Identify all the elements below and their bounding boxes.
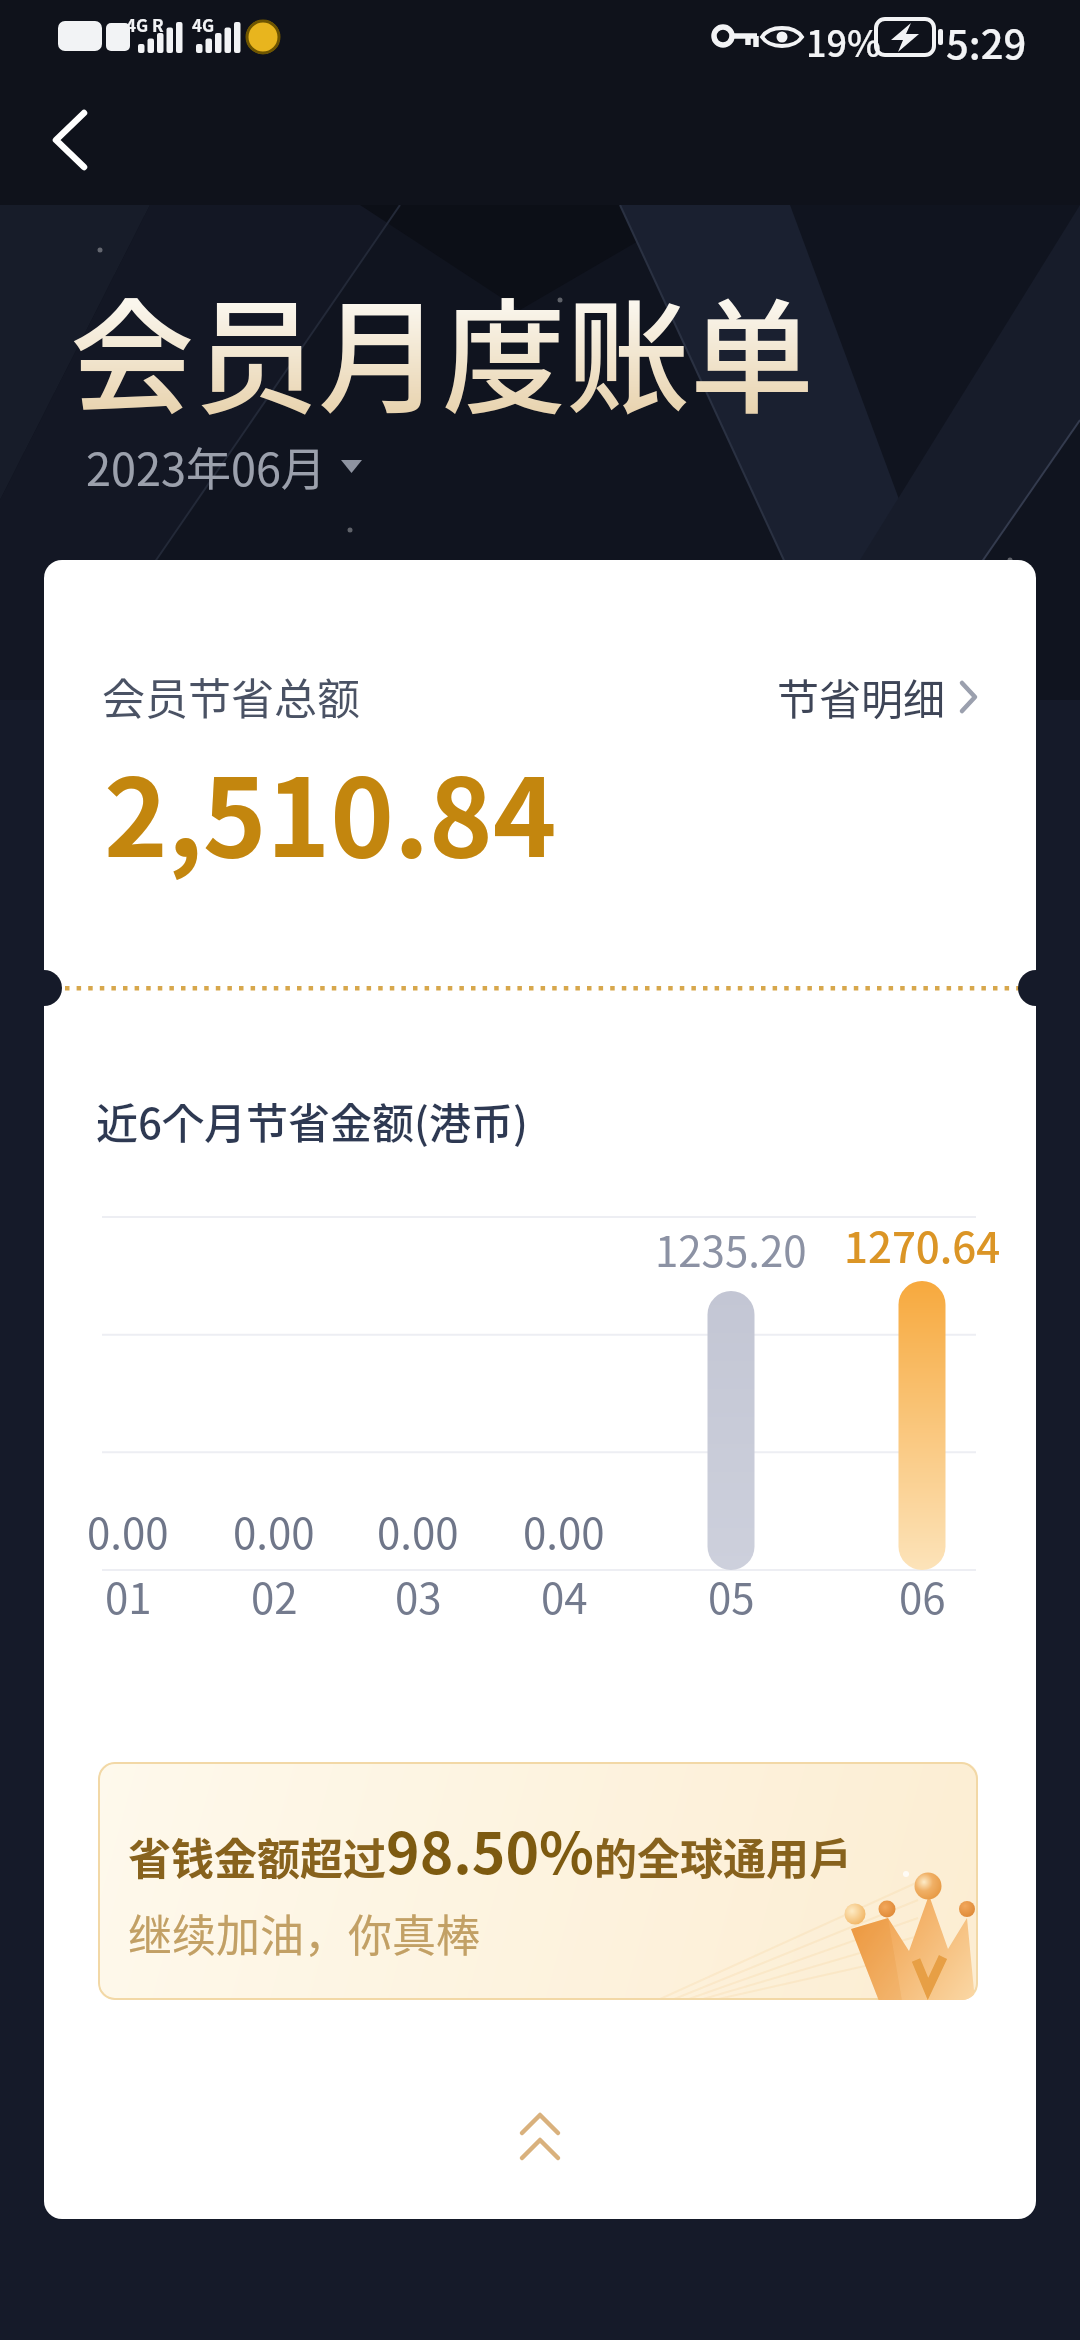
staticText: 98.50% [386,1808,594,1891]
staticText: 继续加油，你真棒 [128,1901,480,1965]
button[interactable]: 省钱金额超过 [98,1762,978,2000]
staticText: 01 [105,1565,152,1626]
staticText: 1235.20 [655,1218,807,1279]
button[interactable] [500,2096,580,2176]
button[interactable]: 节省明细 [777,666,978,727]
staticText: 5:29 [946,13,1027,71]
staticText: 02 [251,1565,298,1626]
staticText: 0.00 [233,1500,315,1561]
staticText: 0.00 [523,1500,605,1561]
staticText: 04 [541,1565,588,1626]
staticText: 近6个月节省金额(港币) [96,1090,528,1151]
staticText: 2023年06月 [86,434,326,499]
button[interactable]: 2023年06月 [86,434,362,499]
staticText: 06 [899,1565,946,1626]
staticText: 4G R [126,12,164,37]
button[interactable] [25,90,115,190]
staticText: 19% [806,15,881,67]
staticText: 会员月度账单 [70,259,815,439]
staticText: 节省明细 [777,666,946,727]
staticText: 2,510.84 [104,732,557,888]
staticText: 的全球通用戶 [594,1825,852,1887]
staticText: 0.00 [377,1500,459,1561]
staticText: 省钱金额超过 [128,1825,386,1887]
staticText: 03 [395,1565,442,1626]
staticText: 会员节省总额 [102,665,360,727]
staticText: 4G [192,12,215,37]
staticText: 0.00 [87,1500,169,1561]
staticText: 05 [708,1565,755,1626]
staticText: 1270.64 [844,1214,1001,1275]
